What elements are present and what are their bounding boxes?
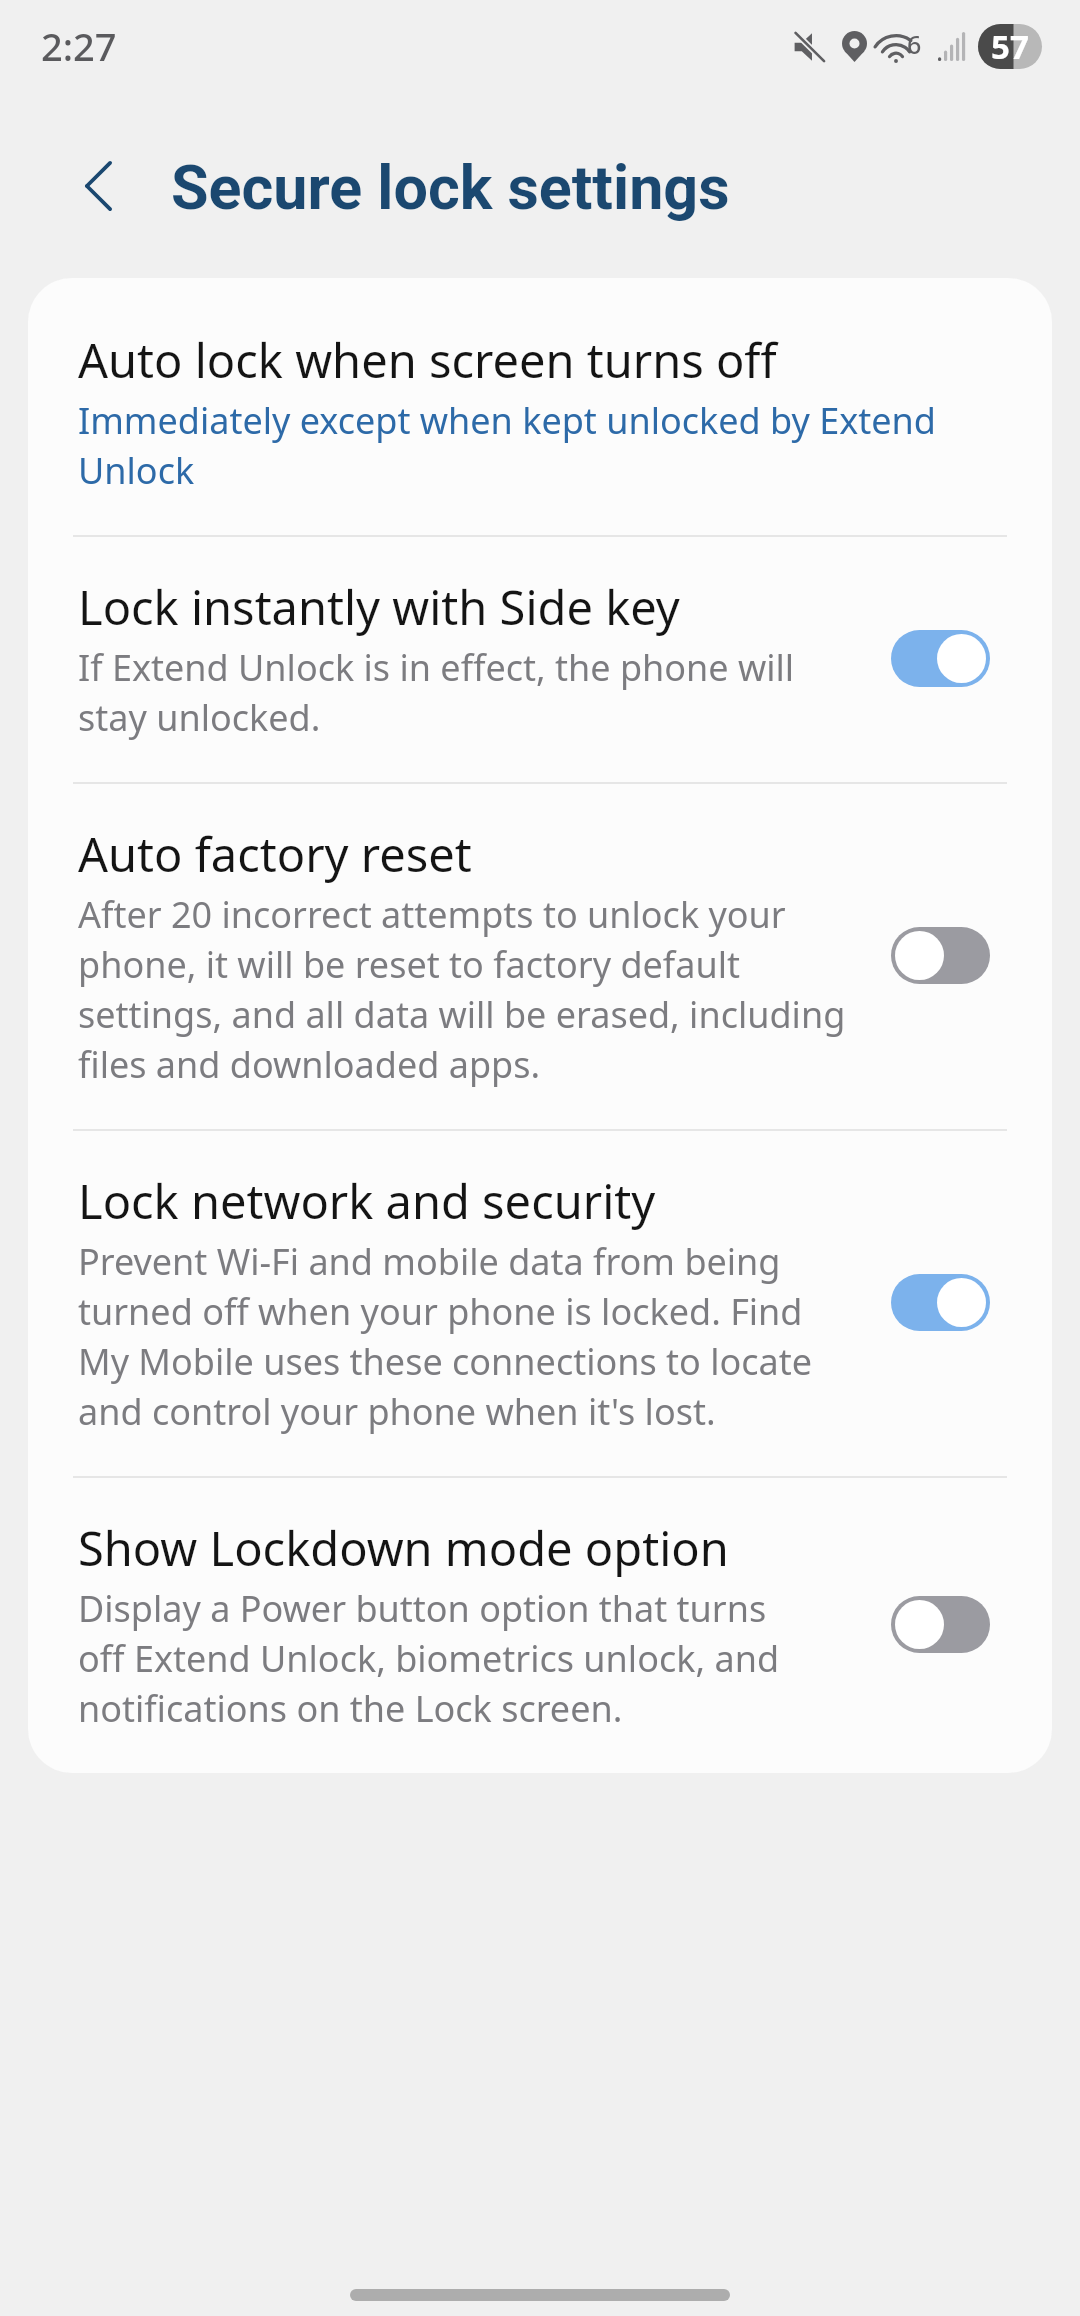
button[interactable]: Lock network and security: [28, 1131, 1052, 1476]
staticText: Display a Power button option that turns…: [78, 1584, 780, 1733]
button[interactable]: Auto factory reset: [28, 784, 1052, 1129]
button[interactable]: Switch off: [891, 927, 990, 984]
staticText: Prevent Wi-Fi and mobile data from being…: [78, 1237, 813, 1436]
staticText: Show Lockdown mode option: [78, 1516, 729, 1580]
staticText: If Extend Unlock is in effect, the phone…: [78, 643, 795, 742]
button[interactable]: Switch on: [891, 630, 990, 687]
staticText: Lock network and security: [78, 1169, 656, 1233]
button[interactable]: Back: [60, 148, 136, 224]
staticText: Lock instantly with Side key: [78, 575, 680, 639]
staticText: 6: [907, 27, 922, 57]
staticText: Secure lock settings: [171, 152, 730, 223]
staticText: Immediately except when kept unlocked by…: [78, 396, 936, 495]
staticText: Auto factory reset: [78, 822, 472, 886]
staticText: Auto lock when screen turns off: [78, 328, 777, 392]
button[interactable]: Auto lock when screen turns off: [28, 278, 1052, 535]
button[interactable]: Switch on: [891, 1274, 990, 1331]
staticText: 57: [991, 24, 1029, 69]
staticText: 2:27: [41, 20, 117, 72]
button[interactable]: Show Lockdown mode option: [28, 1478, 1052, 1773]
button[interactable]: Lock instantly with Side key: [28, 537, 1052, 782]
button[interactable]: Switch off: [891, 1596, 990, 1653]
staticText: After 20 incorrect attempts to unlock yo…: [78, 890, 846, 1089]
